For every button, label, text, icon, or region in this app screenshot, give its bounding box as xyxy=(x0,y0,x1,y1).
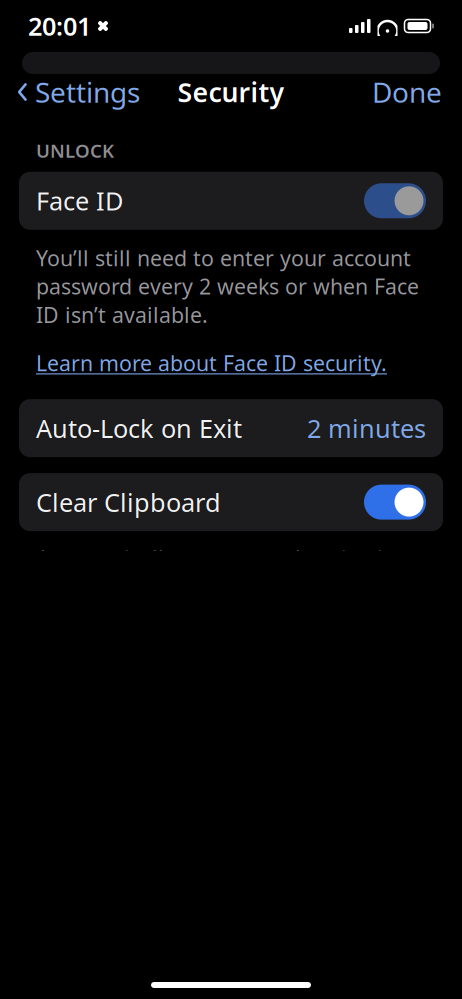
staticText: 2 minutes xyxy=(307,411,426,445)
staticText: You’ll still need to enter your account … xyxy=(36,244,419,329)
staticText: Done xyxy=(372,73,442,111)
staticText: Clear Clipboard xyxy=(36,485,221,519)
staticText: 20:01 xyxy=(28,9,91,43)
button[interactable]: Toggle on xyxy=(364,183,426,218)
staticText: UNLOCK xyxy=(36,138,114,163)
button[interactable]: Settings xyxy=(4,70,152,114)
button[interactable]: Done xyxy=(356,70,458,114)
staticText: Learn more about Face ID security. xyxy=(36,349,387,377)
staticText: Settings xyxy=(35,73,140,111)
button[interactable]: Learn more about Face ID security. xyxy=(0,329,462,381)
staticText: Auto-Lock on Exit xyxy=(36,411,242,445)
button[interactable]: Toggle on xyxy=(364,485,426,520)
staticText: Security xyxy=(177,74,284,110)
button[interactable]: Auto-Lock on Exit xyxy=(0,399,462,457)
staticText: Face ID xyxy=(36,184,123,218)
